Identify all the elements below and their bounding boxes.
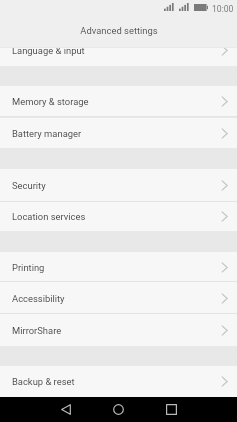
button[interactable]: Home xyxy=(96,397,140,422)
staticText: Printing xyxy=(12,262,45,273)
button[interactable]: Printing xyxy=(0,252,237,282)
staticText: Memory & storage xyxy=(12,96,89,107)
button[interactable]: Security xyxy=(0,169,237,202)
button[interactable]: Battery manager xyxy=(0,118,237,148)
staticText: 10:00 xyxy=(212,4,234,12)
button[interactable]: Recent apps xyxy=(149,397,193,422)
button[interactable]: Accessibility xyxy=(0,282,237,314)
staticText: Advanced settings xyxy=(80,25,158,36)
button[interactable]: Back xyxy=(44,397,88,422)
staticText: Location services xyxy=(12,211,86,222)
button[interactable]: Language & input xyxy=(0,47,237,66)
staticText: Security xyxy=(12,180,46,191)
button[interactable]: MirrorShare xyxy=(0,314,237,346)
staticText: Language & input xyxy=(12,45,85,56)
staticText: Battery manager xyxy=(12,128,82,139)
button[interactable]: Backup & reset xyxy=(0,366,237,397)
button[interactable]: Location services xyxy=(0,202,237,231)
staticText: MirrorShare xyxy=(12,325,62,336)
button[interactable]: Memory & storage xyxy=(0,86,237,117)
staticText: Backup & reset xyxy=(12,376,75,387)
staticText: Accessibility xyxy=(12,293,65,304)
